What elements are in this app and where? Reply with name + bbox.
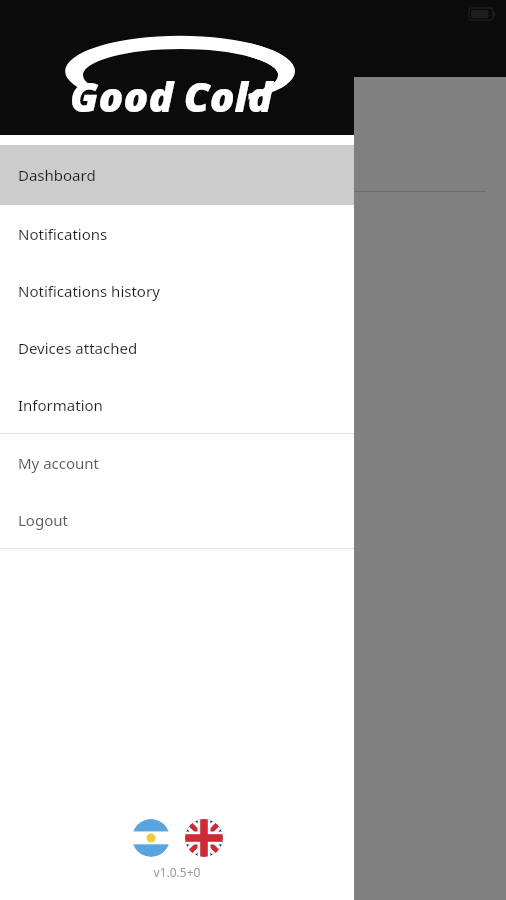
button[interactable]: Notifications history — [0, 262, 354, 319]
staticText: Devices attached — [18, 338, 138, 358]
button[interactable]: Español — [132, 819, 170, 857]
staticText: Notifications history — [18, 281, 160, 301]
staticText: Dashboard — [22, 149, 121, 175]
button[interactable]: Devices attached — [0, 319, 354, 376]
staticText: v1.0.5+0 — [0, 864, 354, 880]
button[interactable]: Information — [0, 376, 354, 433]
staticText: My account — [18, 453, 100, 473]
staticText: You have no devices to your — [34, 329, 231, 349]
button[interactable]: You have no devices to your — [20, 298, 352, 380]
staticText: Logout — [18, 510, 68, 530]
staticText: Good Cold — [70, 68, 273, 124]
staticText: Information — [18, 395, 103, 415]
button[interactable]: My account — [0, 434, 354, 491]
staticText: Dashboard — [18, 165, 96, 185]
button[interactable]: Notifications — [0, 205, 354, 262]
button[interactable]: Logout — [0, 491, 354, 548]
button[interactable]: English — [185, 819, 223, 857]
staticText: Notifications — [18, 224, 108, 244]
button[interactable]: Dashboard — [0, 145, 354, 205]
